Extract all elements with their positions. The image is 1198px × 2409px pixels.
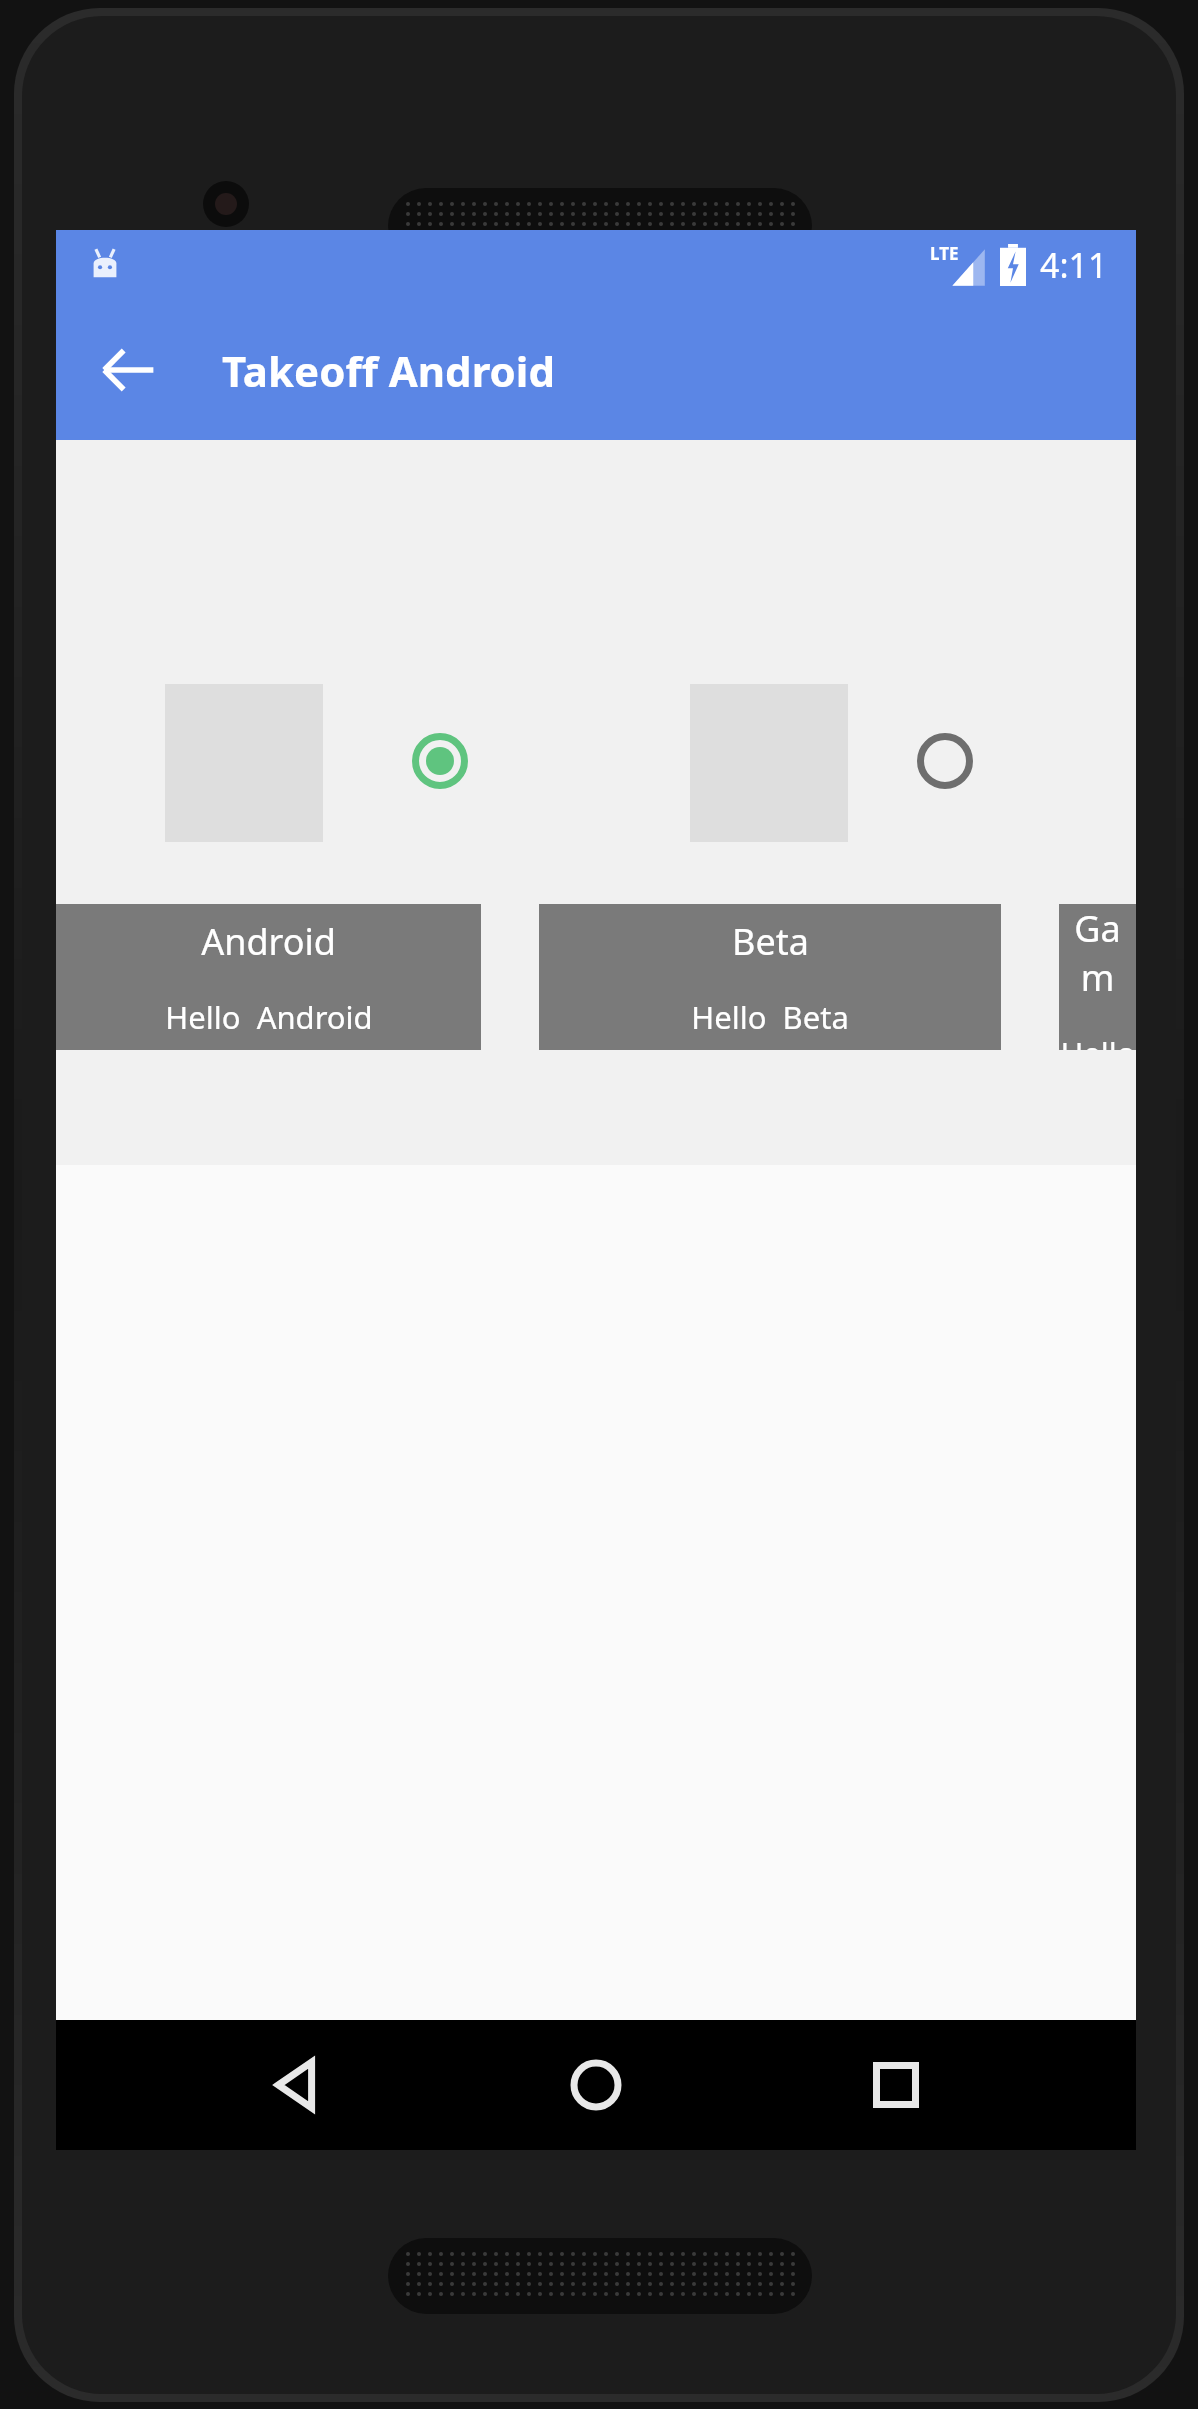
staticText: LTE	[930, 242, 959, 265]
staticText: Android	[201, 917, 336, 966]
button[interactable]: Gam	[1059, 904, 1136, 1050]
button[interactable]: Android	[56, 904, 481, 1050]
staticText: Beta	[732, 917, 809, 966]
button[interactable]: Option one, selected	[385, 706, 495, 816]
button[interactable]: Option two, not selected	[890, 706, 1000, 816]
button[interactable]: Back	[236, 2025, 356, 2145]
button[interactable]: Home	[536, 2025, 656, 2145]
staticText: Hello Android	[165, 996, 373, 1038]
button[interactable]: Recent apps	[836, 2025, 956, 2145]
button[interactable]: Beta	[539, 904, 1001, 1050]
staticText: Takeoff Android	[222, 342, 555, 399]
staticText: Hello Beta	[691, 996, 849, 1038]
staticText: 4:11	[1040, 242, 1108, 288]
button[interactable]: Navigate up	[80, 322, 176, 418]
staticText: Hello	[1060, 1032, 1136, 1050]
staticText: Gam	[1059, 904, 1136, 1002]
